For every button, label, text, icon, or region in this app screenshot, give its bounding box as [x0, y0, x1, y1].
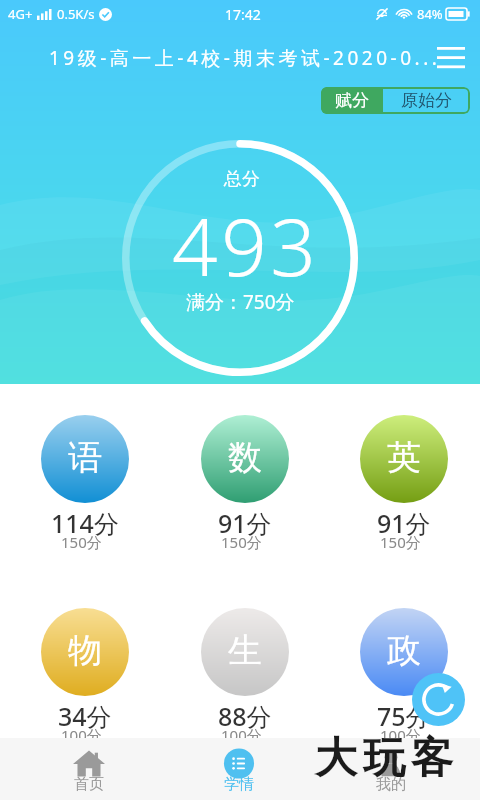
staticText: 114分 [51, 506, 119, 540]
staticText: 88分 [218, 699, 272, 733]
staticText: 英 [387, 436, 421, 479]
button[interactable]: 生 [183, 604, 307, 746]
staticText: 19级-高一上-4校-期末考试-2020-0... [49, 45, 449, 71]
button[interactable]: 政 [342, 604, 466, 746]
staticText: 我的 [376, 775, 406, 794]
staticText: 17:42 [225, 5, 261, 24]
staticText: 学情 [224, 775, 254, 794]
button[interactable]: 赋分 [321, 87, 383, 114]
staticText: 政 [387, 629, 421, 672]
button[interactable]: 原始分 [383, 87, 470, 114]
button[interactable]: 语 [23, 411, 147, 553]
staticText: 91分 [377, 506, 431, 540]
staticText: 150分 [61, 532, 102, 552]
staticText: 原始分 [401, 90, 452, 111]
staticText: 100分 [221, 725, 262, 745]
staticText: 大玩客 [312, 732, 456, 785]
button[interactable]: 学情 [199, 738, 279, 800]
staticText: 4G+ [8, 5, 33, 23]
staticText: 84% [417, 5, 443, 23]
staticText: 赋分 [335, 90, 369, 111]
button[interactable]: 首页 [49, 738, 129, 800]
staticText: 语 [68, 436, 102, 479]
button[interactable]: 数 [183, 411, 307, 553]
staticText: 数 [228, 436, 262, 479]
staticText: 100分 [380, 725, 421, 745]
staticText: 总分 [224, 168, 260, 191]
staticText: 150分 [380, 532, 421, 552]
staticText: 34分 [58, 699, 112, 733]
staticText: 91分 [218, 506, 272, 540]
button[interactable]: 英 [342, 411, 466, 553]
button[interactable]: Menu [428, 34, 474, 80]
staticText: 物 [68, 629, 102, 672]
staticText: 493 [172, 190, 320, 299]
staticText: 生 [228, 629, 262, 672]
staticText: 100分 [61, 725, 102, 745]
staticText: 0.5K/s [57, 5, 95, 23]
staticText: 75分 [377, 699, 431, 733]
button[interactable]: Refresh [412, 673, 465, 726]
staticText: 150分 [221, 532, 262, 552]
staticText: 首页 [74, 775, 104, 794]
button[interactable]: 物 [23, 604, 147, 746]
staticText: 满分：750分 [186, 289, 295, 315]
button[interactable]: 我的 [351, 738, 431, 800]
